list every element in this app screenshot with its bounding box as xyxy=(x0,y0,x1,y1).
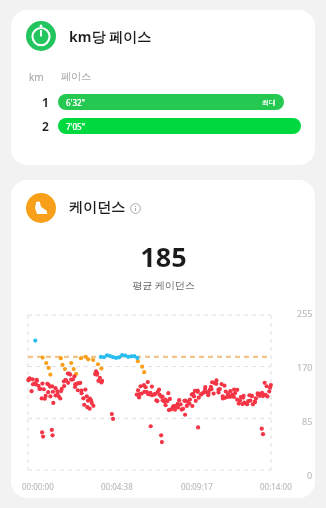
staticText: 케이던스 xyxy=(69,199,125,217)
staticText: 00:09:17 xyxy=(181,481,213,492)
staticText: km xyxy=(29,70,44,84)
staticText: 평균 케이던스 xyxy=(132,278,195,292)
staticText: 00:04:38 xyxy=(101,481,133,492)
staticText: 185 xyxy=(140,238,187,275)
staticText: 2 xyxy=(42,118,49,134)
staticText: 85 xyxy=(302,415,313,427)
staticText: km당 페이스 xyxy=(69,27,151,46)
staticText: 00:14:00 xyxy=(260,481,292,492)
staticText: 170 xyxy=(297,361,313,373)
button[interactable]: km당 페이스 xyxy=(11,10,315,165)
staticText: 0 xyxy=(307,469,313,481)
staticText: 6'32" xyxy=(66,97,86,108)
staticText: 255 xyxy=(297,307,313,319)
staticText: 최대 xyxy=(262,98,276,107)
staticText: 00:00:00 xyxy=(22,481,54,492)
button[interactable]: 케이던스 xyxy=(11,180,315,498)
staticText: 페이스 xyxy=(61,70,91,83)
staticText: 1 xyxy=(42,94,49,110)
button[interactable]: 1 xyxy=(11,93,315,111)
staticText: 7'05" xyxy=(66,121,86,132)
button[interactable]: 정보 xyxy=(130,203,141,214)
button[interactable]: 2 xyxy=(11,117,315,135)
